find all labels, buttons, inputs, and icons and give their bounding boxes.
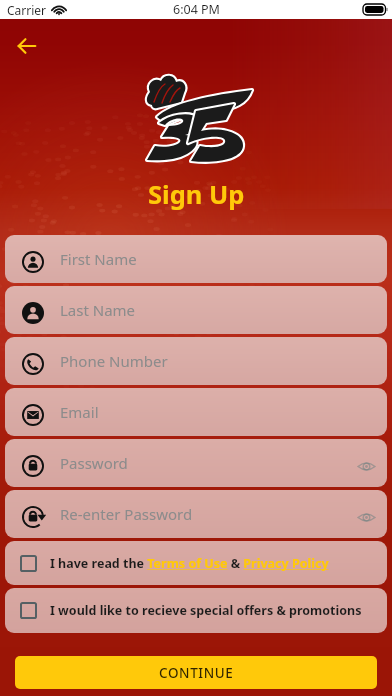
button[interactable]: Phone Number [5,337,387,385]
staticText: I would like to recieve special offers &… [50,602,362,619]
button[interactable]: Back [14,33,40,59]
button[interactable]: Last Name [5,286,387,334]
staticText: 6:04 PM [173,1,220,18]
staticText: Email [60,402,99,422]
staticText: Password [60,453,128,473]
button[interactable]: Email [5,388,387,436]
staticText: Last Name [60,300,136,320]
staticText: First Name [60,249,137,269]
staticText: Carrier [7,2,47,18]
button[interactable]: CONTINUE [15,656,377,689]
staticText: CONTINUE [159,664,234,682]
staticText: Sign Up [148,177,245,212]
button[interactable]: Re-enter Password [5,490,387,538]
button[interactable]: I have read the Terms of Use & Privacy P… [5,541,387,585]
button[interactable]: First Name [5,235,387,283]
button[interactable]: Password [5,439,387,487]
staticText: Re-enter Password [60,504,193,524]
staticText: I have read the Terms of Use & Privacy P… [50,555,329,572]
staticText: Phone Number [60,351,168,371]
button[interactable]: I would like to recieve special offers &… [5,588,387,633]
